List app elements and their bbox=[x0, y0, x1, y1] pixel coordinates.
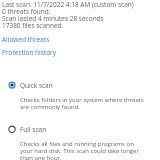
staticText: Protection history bbox=[2, 48, 56, 57]
button[interactable]: Protection history bbox=[2, 48, 56, 57]
staticText: Checks folders in your system where thre… bbox=[20, 96, 144, 104]
staticText: 17380 files scanned. bbox=[2, 21, 64, 30]
button[interactable]: Quick scan option bbox=[0, 79, 160, 106]
staticText: are commonly found. bbox=[20, 103, 80, 111]
staticText: Checks all files and running programs on bbox=[20, 140, 134, 148]
staticText: Allowed threats bbox=[2, 35, 50, 44]
button[interactable]: Allowed threats bbox=[2, 35, 50, 44]
staticText: Full scan bbox=[20, 125, 47, 134]
staticText: your hard disk. This scan could take lon… bbox=[20, 147, 139, 155]
staticText: than one hour. bbox=[20, 154, 62, 160]
button[interactable]: Full scan option bbox=[0, 123, 160, 160]
other: Full scan option bbox=[0, 123, 24, 135]
other: Quick scan option bbox=[0, 79, 24, 91]
staticText: Last scan: 11/7/2022 4:18 AM (custom sca… bbox=[2, 0, 134, 9]
staticText: Scan lasted 4 minutes 28 seconds bbox=[2, 14, 104, 23]
staticText: 0 threats found. bbox=[2, 7, 51, 16]
staticText: Quick scan bbox=[20, 81, 53, 90]
